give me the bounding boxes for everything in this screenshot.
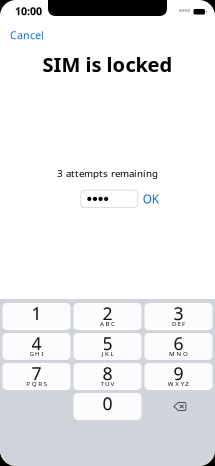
staticText: GHI bbox=[29, 349, 43, 358]
staticText: 5 bbox=[102, 331, 112, 355]
staticText: PQRS bbox=[26, 379, 47, 388]
staticText: TUV bbox=[100, 379, 114, 388]
staticText: 9 bbox=[173, 361, 183, 385]
button[interactable]: Cancel bbox=[0, 21, 54, 43]
staticText: 1 bbox=[31, 301, 41, 325]
button[interactable]: 7 bbox=[2, 363, 70, 390]
staticText: OK bbox=[143, 191, 159, 207]
button[interactable]: 6 bbox=[144, 333, 212, 360]
staticText: 6 bbox=[173, 331, 183, 355]
staticText: 2 bbox=[102, 301, 112, 325]
staticText: ABC bbox=[100, 319, 115, 328]
button[interactable]: 8 bbox=[73, 363, 141, 390]
button[interactable]: 0 bbox=[73, 393, 141, 420]
button[interactable]: 4 bbox=[2, 333, 70, 360]
staticText: 4 bbox=[31, 331, 41, 355]
staticText: 7 bbox=[31, 361, 41, 385]
staticText: Cancel bbox=[10, 28, 44, 42]
staticText: JKL bbox=[101, 349, 113, 358]
button[interactable]: 1 bbox=[2, 303, 70, 330]
staticText: 10:00 bbox=[15, 4, 42, 18]
staticText: 0 bbox=[102, 391, 112, 415]
staticText: 8 bbox=[102, 361, 112, 385]
button[interactable]: 9 bbox=[144, 363, 212, 390]
staticText: 3 bbox=[173, 301, 183, 325]
staticText: 3 attempts remaining bbox=[57, 167, 158, 180]
staticText: WXYZ bbox=[168, 379, 189, 388]
button[interactable]: 2 bbox=[73, 303, 141, 330]
staticText: MNO bbox=[169, 349, 188, 358]
staticText: SIM is locked bbox=[42, 51, 172, 78]
button[interactable]: 3 bbox=[144, 303, 212, 330]
button[interactable]: OK bbox=[138, 188, 164, 210]
button[interactable]: 5 bbox=[73, 333, 141, 360]
staticText: DEF bbox=[172, 319, 185, 328]
button[interactable]: Delete bbox=[144, 393, 212, 420]
